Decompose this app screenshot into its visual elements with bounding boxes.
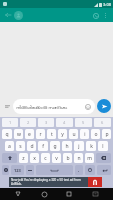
staticText: . <box>78 167 80 173</box>
button[interactable]: c <box>41 153 50 163</box>
button[interactable]: q <box>2 129 12 139</box>
button[interactable]: u <box>69 129 78 139</box>
button[interactable]: Call <box>90 10 101 21</box>
button[interactable]: s <box>16 141 25 151</box>
staticText: s <box>19 143 22 150</box>
staticText: m <box>87 155 92 162</box>
staticText: 3 <box>45 120 48 125</box>
button[interactable]: 3 <box>38 118 54 127</box>
button[interactable]: l <box>98 141 108 151</box>
button[interactable]: h <box>62 141 72 151</box>
staticText: u <box>72 131 76 138</box>
button[interactable]: m <box>85 153 94 163</box>
staticText: g <box>53 143 57 150</box>
button[interactable]: Hide keyboard <box>88 188 102 200</box>
staticText: x <box>33 155 36 162</box>
staticText: v <box>55 155 58 162</box>
staticText: a <box>8 143 11 150</box>
staticText: w <box>17 131 21 138</box>
staticText: 2 <box>27 120 30 125</box>
button[interactable]: നിങ്ങൾക്കൊരു സന്ദേശം <box>13 99 95 114</box>
button[interactable]: Home <box>37 188 51 200</box>
button[interactable]: Back <box>11 188 25 200</box>
button[interactable]: b <box>63 153 72 163</box>
button[interactable]: f <box>38 141 48 151</box>
button[interactable]: j <box>74 141 84 151</box>
button[interactable]: Attach <box>2 101 13 112</box>
button[interactable]: v <box>52 153 61 163</box>
staticText: b <box>66 155 70 162</box>
button[interactable]: Enter <box>97 165 111 175</box>
staticText: q <box>5 131 9 138</box>
staticText: 123 <box>14 168 21 173</box>
staticText: e <box>28 131 31 138</box>
button[interactable]: z <box>19 153 28 163</box>
button[interactable]: Keyboard settings <box>2 165 9 175</box>
staticText: o <box>94 131 98 138</box>
staticText: l <box>102 143 104 150</box>
staticText: h <box>65 143 69 150</box>
button[interactable]: More options <box>101 11 110 20</box>
button[interactable]: n <box>74 153 83 163</box>
button[interactable]: p <box>102 129 111 139</box>
button[interactable]: w <box>14 129 23 139</box>
button[interactable]: o <box>91 129 100 139</box>
staticText: 1 <box>9 120 12 125</box>
button[interactable]: 123 <box>11 165 24 175</box>
staticText: r <box>39 131 42 138</box>
staticText: y <box>61 131 64 138</box>
staticText: New job! You're displaying a 320 x 50 te… <box>11 178 88 186</box>
button[interactable]: . <box>75 165 83 175</box>
button[interactable]: y <box>58 129 67 139</box>
button[interactable]: Emoji keyboard <box>85 165 95 175</box>
button[interactable]: 2 <box>20 118 36 127</box>
staticText: z <box>22 155 25 162</box>
staticText: 5 <box>82 120 85 125</box>
button[interactable]: i <box>80 129 89 139</box>
staticText: i <box>84 131 86 138</box>
button[interactable]: 1 <box>2 118 18 127</box>
button[interactable]: Language <box>26 165 34 175</box>
button[interactable]: k <box>86 141 96 151</box>
button[interactable]: d <box>27 141 36 151</box>
staticText: നിങ്ങൾക്കൊരു സന്ദേശം <box>16 104 84 110</box>
button[interactable]: Send <box>97 99 111 113</box>
button[interactable]: t <box>47 129 56 139</box>
button[interactable]: New job! You're displaying a 320 x 50 te… <box>9 177 102 187</box>
button[interactable]: x <box>30 153 39 163</box>
staticText: t <box>51 131 53 138</box>
staticText: k <box>90 143 93 150</box>
staticText: 3:08 <box>103 2 111 7</box>
button[interactable]: Back <box>3 10 13 20</box>
button[interactable]: Shift <box>2 153 17 163</box>
button[interactable]: Recents <box>62 188 76 200</box>
button[interactable]: Emoji <box>84 103 92 111</box>
staticText: j <box>78 143 80 150</box>
button[interactable]: Space <box>36 165 73 175</box>
staticText: 4 <box>63 120 66 125</box>
button[interactable]: a <box>5 141 14 151</box>
button[interactable]: 5 <box>75 118 92 127</box>
staticText: 6 <box>101 120 104 125</box>
button[interactable]: Contact avatar <box>14 11 23 20</box>
button[interactable]: r <box>36 129 45 139</box>
staticText: c <box>44 155 47 162</box>
button[interactable]: 4 <box>56 118 73 127</box>
button[interactable]: g <box>50 141 60 151</box>
button[interactable]: e <box>25 129 34 139</box>
staticText: d <box>30 143 34 150</box>
button[interactable]: Backspace <box>96 153 111 163</box>
button[interactable]: 6 <box>94 118 111 127</box>
staticText: n <box>77 155 81 162</box>
staticText: p <box>105 131 109 138</box>
staticText: f <box>42 143 44 150</box>
